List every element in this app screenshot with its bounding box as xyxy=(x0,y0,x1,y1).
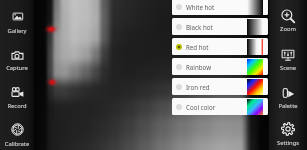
staticText: Palette xyxy=(269,102,307,110)
staticText: Red hot xyxy=(186,43,209,51)
staticText: Scene xyxy=(269,64,307,72)
button[interactable]: Cool color xyxy=(172,98,268,115)
button[interactable]: Palette xyxy=(269,82,307,108)
button[interactable]: Scene xyxy=(269,44,307,70)
staticText: Capture xyxy=(0,64,34,72)
staticText: Rainbow xyxy=(186,63,212,71)
staticText: Iron red xyxy=(186,83,210,91)
button[interactable]: Iron red xyxy=(172,78,268,95)
button[interactable]: Black hot xyxy=(172,18,268,35)
button[interactable]: Rainbow xyxy=(172,58,268,75)
button[interactable]: Gallery xyxy=(0,6,34,32)
button[interactable]: White hot xyxy=(172,0,268,15)
button[interactable]: Calibrate xyxy=(0,119,34,145)
staticText: Settings xyxy=(269,139,307,147)
staticText: Cool color xyxy=(186,103,216,111)
button[interactable]: Settings xyxy=(269,118,307,144)
button[interactable]: Capture xyxy=(0,45,34,71)
button[interactable]: Record xyxy=(0,82,34,108)
staticText: Gallery xyxy=(0,27,34,35)
staticText: Record xyxy=(0,102,34,110)
staticText: White hot xyxy=(186,3,215,11)
staticText: Black hot xyxy=(186,23,213,31)
staticText: Calibrate xyxy=(0,140,34,148)
button[interactable]: Zoom xyxy=(269,5,307,31)
staticText: Zoom xyxy=(269,25,307,33)
button[interactable]: Red hot xyxy=(172,38,268,55)
